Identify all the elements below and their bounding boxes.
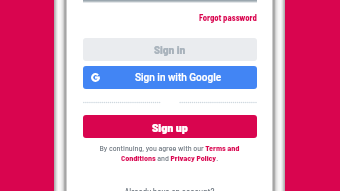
staticText: Forgot password	[199, 12, 257, 22]
staticText: Already have an account?	[67, 186, 272, 191]
button[interactable]: Sign in	[83, 38, 257, 61]
button[interactable]: Sign up	[83, 115, 257, 138]
staticText: Sign in	[154, 42, 186, 56]
button[interactable]: Sign in with Google	[83, 66, 257, 89]
staticText: Sign in with Google	[135, 72, 222, 84]
staticText: Sign up	[152, 120, 188, 134]
button[interactable]: Forgot password	[177, 11, 257, 23]
staticText: By continuing, you agree with our Terms …	[83, 143, 256, 163]
